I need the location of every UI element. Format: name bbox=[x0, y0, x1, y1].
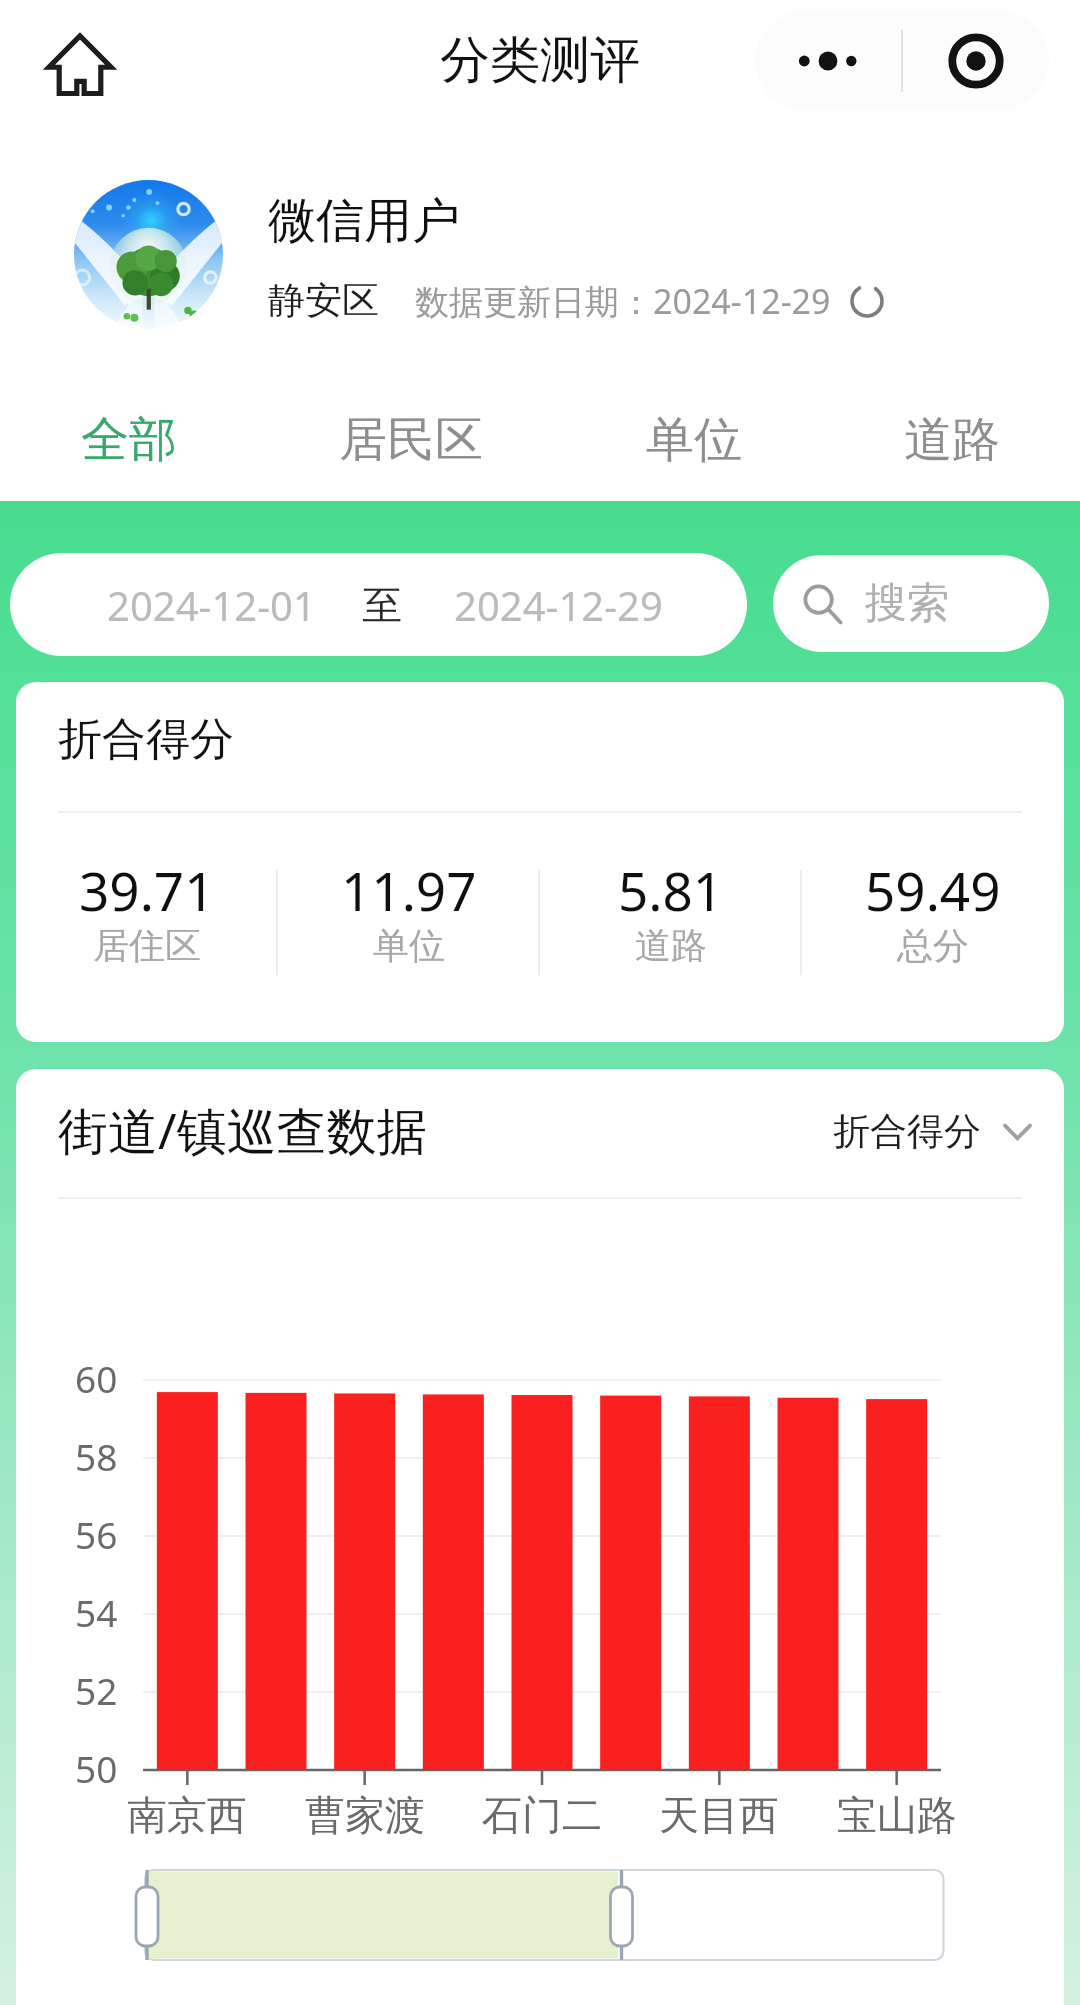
button[interactable]: 道路 bbox=[904, 385, 1000, 495]
staticText: 道路 bbox=[904, 410, 1000, 470]
staticText: 5.81 bbox=[618, 854, 724, 926]
staticText: 街道/镇巡查数据 bbox=[58, 1096, 427, 1164]
staticText: 至 bbox=[362, 580, 402, 630]
button[interactable]: 单位 bbox=[646, 385, 742, 495]
button[interactable]: 11.97 bbox=[278, 854, 540, 984]
staticText: 59.49 bbox=[865, 854, 1001, 926]
staticText: 居民区 bbox=[339, 410, 483, 470]
staticText: 全部 bbox=[81, 410, 177, 470]
staticText: 南京西 bbox=[127, 1790, 247, 1840]
button[interactable]: 搜索 bbox=[773, 555, 1049, 652]
staticText: 2024-12-29 bbox=[454, 578, 663, 632]
button[interactable]: 2024-12-01 bbox=[10, 553, 747, 656]
staticText: 56 bbox=[75, 1509, 118, 1559]
staticText: 总分 bbox=[897, 923, 969, 968]
button[interactable] bbox=[74, 180, 223, 329]
button[interactable]: Home bbox=[24, 8, 136, 120]
staticText: 52 bbox=[75, 1665, 118, 1715]
button[interactable]: 居民区 bbox=[339, 385, 483, 495]
staticText: 搜索 bbox=[865, 577, 949, 630]
staticText: 54 bbox=[75, 1587, 118, 1637]
button[interactable]: Menu bbox=[755, 12, 1049, 109]
staticText: 道路 bbox=[635, 923, 707, 968]
staticText: 宝山路 bbox=[837, 1790, 957, 1840]
staticText: 2024-12-01 bbox=[107, 578, 316, 632]
staticText: 天目西 bbox=[659, 1790, 779, 1840]
staticText: 39.71 bbox=[79, 854, 215, 926]
staticText: 折合得分 bbox=[58, 712, 234, 767]
button[interactable]: 39.71 bbox=[16, 854, 278, 984]
staticText: 静安区 bbox=[268, 277, 379, 324]
staticText: 单位 bbox=[646, 410, 742, 470]
staticText: 居住区 bbox=[93, 923, 201, 968]
staticText: 11.97 bbox=[341, 854, 477, 926]
staticText: 58 bbox=[75, 1431, 118, 1481]
button[interactable]: 5.81 bbox=[540, 854, 802, 984]
staticText: 数据更新日期：2024-12-29 bbox=[415, 278, 831, 324]
button[interactable]: 折合得分 bbox=[833, 1108, 1030, 1155]
staticText: 分类测评 bbox=[440, 29, 640, 92]
staticText: 50 bbox=[75, 1743, 118, 1793]
staticText: 60 bbox=[75, 1353, 118, 1403]
button[interactable]: Refresh bbox=[845, 279, 889, 323]
staticText: 折合得分 bbox=[833, 1108, 981, 1155]
button[interactable]: 59.49 bbox=[802, 854, 1064, 984]
button[interactable]: 全部 bbox=[81, 385, 177, 495]
staticText: 石门二 bbox=[482, 1790, 602, 1840]
staticText: 单位 bbox=[373, 923, 445, 968]
staticText: 曹家渡 bbox=[305, 1790, 425, 1840]
staticText: 微信用户 bbox=[268, 191, 460, 251]
